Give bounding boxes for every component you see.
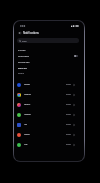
staticText: Google Play — [24, 94, 31, 96]
button[interactable]: Search — [17, 38, 79, 43]
staticText: App icon badges — [18, 50, 26, 51]
staticText: More notification settings — [18, 62, 30, 63]
button[interactable]: Facebook — [14, 130, 84, 140]
staticText: Notifications — [23, 31, 39, 35]
staticText: Notification — [24, 114, 31, 116]
staticText: Manage all — [18, 73, 25, 75]
staticText: Facebook — [24, 134, 30, 136]
staticText: Enabled — [66, 104, 71, 106]
staticText: Enabled — [66, 84, 71, 86]
staticText: Enabled — [66, 144, 71, 146]
staticText: Search — [22, 40, 27, 42]
button[interactable]: Gmail — [14, 140, 84, 150]
button[interactable]: Notification — [14, 110, 84, 120]
staticText: Lock screen notifications — [18, 56, 29, 57]
staticText: Enabled — [66, 134, 71, 136]
button[interactable]: App icon badges — [14, 47, 84, 53]
staticText: Instagram — [24, 104, 31, 106]
button[interactable]: Lock screen notifications — [14, 53, 84, 59]
staticText: Uber — [24, 124, 27, 126]
button[interactable]: Uber — [14, 120, 84, 130]
button[interactable]: Back — [18, 31, 22, 35]
staticText: Enabled — [66, 94, 71, 96]
button[interactable]: Messages — [14, 80, 84, 90]
staticText: Enabled — [66, 114, 71, 116]
staticText: Enabled — [66, 124, 71, 126]
staticText: Gmail — [24, 144, 28, 146]
staticText: Messages — [24, 84, 30, 86]
staticText: RECENTLY SENT — [18, 68, 27, 70]
button[interactable]: More notification settings — [14, 59, 84, 65]
button[interactable]: Instagram — [14, 100, 84, 110]
button[interactable]: Google Play — [14, 90, 84, 100]
